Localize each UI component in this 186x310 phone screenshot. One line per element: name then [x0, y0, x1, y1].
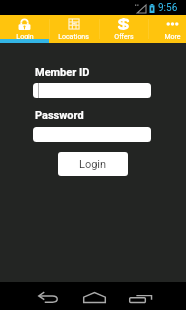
button[interactable]: Login: [58, 152, 128, 176]
button[interactable]: Offers: [99, 15, 148, 43]
button[interactable]: [33, 83, 151, 98]
staticText: Member ID: [35, 66, 90, 79]
staticText: Password: [35, 109, 84, 122]
staticText: Login: [79, 158, 107, 171]
button[interactable]: Home: [71, 282, 117, 310]
button[interactable]: Back: [24, 282, 70, 310]
button[interactable]: Locations: [49, 15, 98, 43]
button[interactable]: Login: [0, 15, 49, 43]
staticText: Offers: [114, 33, 134, 41]
staticText: Login: [16, 33, 34, 41]
button[interactable]: More: [148, 15, 186, 43]
staticText: More: [164, 33, 181, 41]
staticText: Locations: [58, 33, 89, 41]
button[interactable]: Recent apps: [117, 282, 163, 310]
button[interactable]: [33, 127, 151, 142]
staticText: 9:56: [158, 2, 178, 14]
